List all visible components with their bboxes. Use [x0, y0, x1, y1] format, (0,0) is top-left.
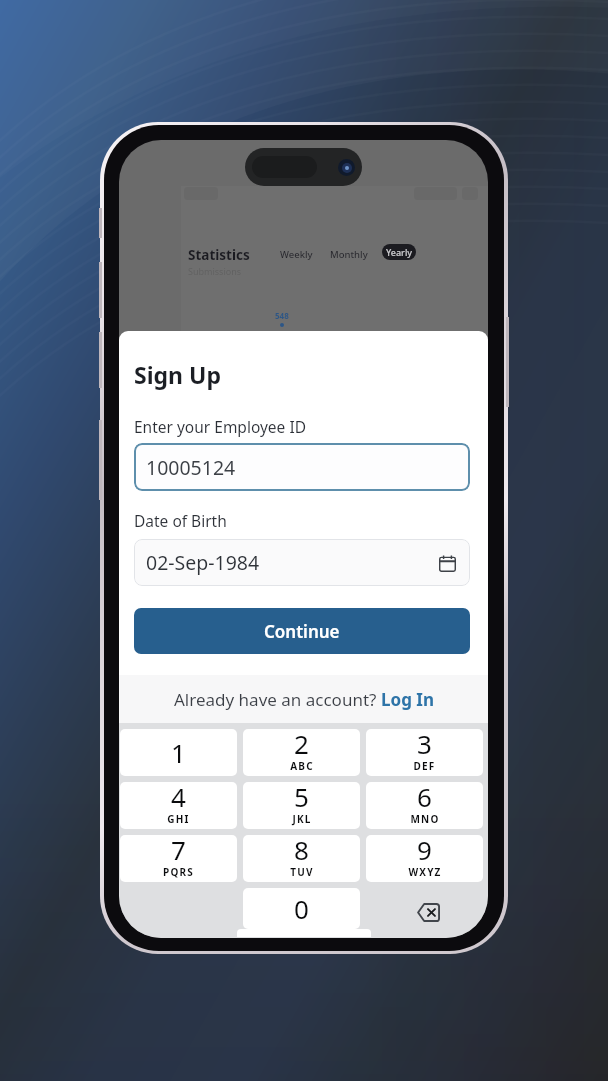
staticText: 0: [294, 891, 309, 926]
staticText: 10005124: [146, 454, 236, 481]
button[interactable]: 5: [243, 782, 360, 829]
button[interactable]: Log In: [381, 688, 434, 711]
staticText: Sign Up: [134, 359, 221, 390]
button[interactable]: 1: [120, 729, 237, 776]
staticText: 1: [171, 735, 186, 770]
button[interactable]: Backspace: [366, 888, 483, 929]
button[interactable]: 6: [366, 782, 483, 829]
button[interactable]: 0: [243, 888, 360, 929]
staticText: Yearly: [386, 246, 413, 258]
button[interactable]: 10005124: [134, 443, 470, 491]
staticText: Already have an account?: [174, 688, 381, 711]
staticText: ABC: [290, 759, 314, 773]
button[interactable]: 02-Sep-1984: [134, 539, 470, 586]
staticText: 8: [294, 835, 309, 867]
staticText: Enter your Employee ID: [134, 416, 306, 437]
staticText: Date of Birth: [134, 510, 227, 531]
staticText: 3: [417, 729, 432, 761]
staticText: MNO: [410, 812, 440, 826]
staticText: DEF: [413, 759, 436, 773]
button[interactable]: 9: [366, 835, 483, 882]
staticText: Log In: [381, 688, 434, 711]
staticText: JKL: [292, 812, 312, 826]
button[interactable]: 8: [243, 835, 360, 882]
staticText: Statistics: [188, 246, 250, 264]
button[interactable]: 7: [120, 835, 237, 882]
staticText: 5: [294, 782, 309, 814]
staticText: Continue: [264, 620, 340, 643]
staticText: 7: [171, 835, 186, 867]
staticText: 4: [171, 782, 186, 814]
staticText: PQRS: [163, 865, 194, 879]
button[interactable]: Pick date: [434, 550, 460, 576]
staticText: 6: [417, 782, 432, 814]
staticText: 2: [294, 729, 309, 761]
staticText: TUV: [290, 865, 314, 879]
staticText: WXYZ: [408, 865, 442, 879]
staticText: Monthly: [330, 248, 368, 261]
staticText: GHI: [167, 812, 190, 826]
button[interactable]: 2: [243, 729, 360, 776]
button[interactable]: 3: [366, 729, 483, 776]
staticText: 02-Sep-1984: [146, 549, 260, 576]
staticText: 548: [275, 310, 289, 321]
staticText: 9: [417, 835, 432, 867]
staticText: Weekly: [280, 248, 313, 261]
button[interactable]: 4: [120, 782, 237, 829]
button[interactable]: Continue: [134, 608, 470, 654]
staticText: Submissions: [188, 265, 242, 277]
